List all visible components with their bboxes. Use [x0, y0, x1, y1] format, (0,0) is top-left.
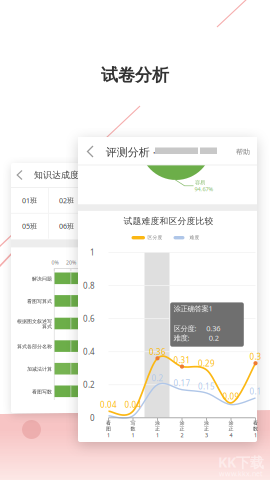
staticText: KK下载: [218, 452, 264, 471]
staticText: 根据图文叙述写: [17, 318, 52, 324]
staticText: 写: [130, 420, 135, 426]
staticText: www.kkx.net: [219, 469, 263, 478]
staticText: 0.36: [206, 323, 220, 334]
staticText: 涂正确答案1: [173, 303, 212, 314]
button[interactable]: 07班: [0, 0, 270, 480]
staticText: 0.4: [83, 346, 95, 357]
staticText: 正: [204, 426, 209, 432]
button[interactable]: 05班: [0, 0, 270, 480]
staticText: 涂: [204, 420, 209, 426]
staticText: 01班: [22, 196, 37, 205]
staticText: 0.15: [198, 381, 215, 392]
staticText: 容易: [195, 179, 205, 186]
staticText: 1: [107, 431, 110, 439]
staticText: 正: [228, 426, 233, 432]
button[interactable]: 02班: [0, 0, 270, 480]
staticText: 区分度: [147, 234, 162, 240]
staticText: 帮助: [236, 148, 250, 156]
staticText: 难度: [189, 234, 199, 240]
staticText: 0.29: [198, 358, 215, 369]
staticText: 看图写算式: [27, 298, 52, 305]
staticText: 2: [180, 431, 183, 439]
staticText: 1: [90, 247, 95, 258]
staticText: 解决问题: [32, 276, 52, 282]
staticText: 02班: [59, 196, 74, 205]
staticText: 涂: [228, 420, 233, 426]
staticText: 试卷分析: [101, 64, 169, 86]
staticText: 05班: [22, 221, 37, 231]
staticText: 0.3: [249, 351, 261, 362]
staticText: 0.04: [124, 399, 141, 410]
button[interactable]: 04班: [0, 0, 270, 480]
staticText: 涂: [179, 420, 184, 426]
staticText: 0.04: [100, 399, 117, 410]
staticText: 04班: [133, 196, 148, 205]
staticText: 03班: [96, 196, 111, 205]
staticText: 94.67%: [194, 185, 213, 193]
staticText: 4: [229, 431, 232, 439]
staticText: 涂: [155, 420, 160, 426]
staticText: 0.2: [209, 333, 219, 343]
staticText: 加减法计算: [27, 366, 52, 372]
staticText: 图: [106, 426, 111, 432]
staticText: 0.17: [173, 378, 190, 389]
staticText: 数: [130, 426, 135, 432]
staticText: 08班: [133, 221, 148, 231]
staticText: 20%: [66, 259, 76, 266]
staticText: 数: [253, 426, 258, 432]
staticText: 试题难度和区分度比较: [123, 215, 213, 226]
button[interactable]: 03班: [0, 0, 270, 480]
staticText: 3: [205, 431, 208, 439]
staticText: 正: [179, 426, 184, 432]
staticText: 算式各部分名称: [17, 343, 52, 350]
staticText: 难度:: [173, 333, 189, 343]
staticText: 评测分析 ·: [106, 144, 156, 159]
staticText: 1: [131, 431, 134, 439]
button[interactable]: 返回: [0, 0, 270, 480]
staticText: 0.36: [149, 346, 166, 357]
staticText: 0.31: [173, 355, 190, 365]
staticText: 0.1: [249, 386, 261, 397]
staticText: 0.8: [83, 280, 95, 291]
staticText: 正: [155, 426, 160, 432]
button[interactable]: 帮助: [0, 0, 270, 480]
button[interactable]: 08班: [0, 0, 270, 480]
staticText: 区分度:: [173, 323, 196, 334]
staticText: 1: [254, 431, 257, 439]
staticText: 0%: [51, 259, 58, 266]
staticText: 知识达成度: [34, 169, 79, 181]
staticText: 0.09: [222, 391, 239, 402]
staticText: 0: [90, 412, 95, 423]
button[interactable]: 返回: [0, 0, 270, 480]
button[interactable]: 06班: [0, 0, 270, 480]
staticText: 0.2: [151, 373, 163, 384]
staticText: 0.6: [83, 313, 95, 324]
button[interactable]: 01班: [0, 0, 270, 480]
staticText: 1: [156, 431, 159, 439]
staticText: 06班: [59, 221, 74, 231]
staticText: 看: [106, 420, 111, 426]
staticText: 看: [253, 420, 258, 426]
staticText: 0.2: [83, 379, 95, 390]
staticText: 算式: [42, 324, 52, 330]
staticText: 看图写数: [32, 389, 52, 395]
